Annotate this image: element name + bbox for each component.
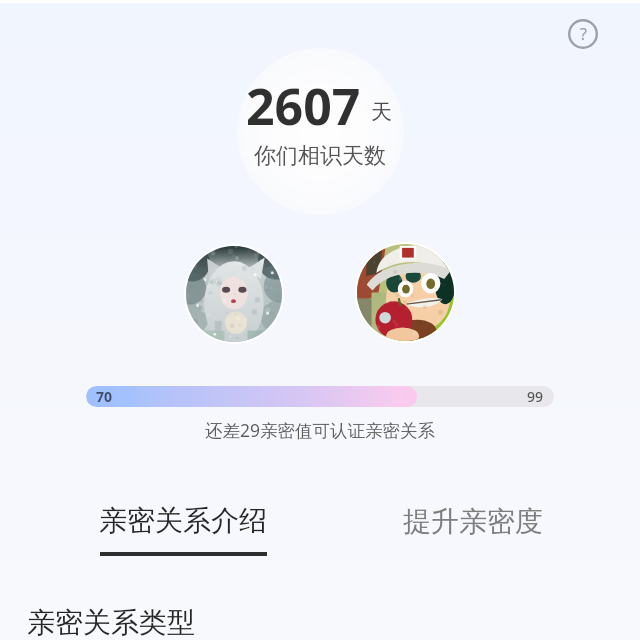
button[interactable]: 亲密关系介绍 <box>87 495 279 564</box>
staticText: 天 <box>371 99 392 125</box>
staticText: 你们相识天数 <box>254 142 386 170</box>
staticText: 70 <box>96 387 113 406</box>
button[interactable]: Help <box>564 15 602 53</box>
staticText: 2607 <box>246 72 361 140</box>
staticText: 提升亲密度 <box>403 504 543 539</box>
staticText: ? <box>580 23 587 45</box>
staticText: 亲密关系介绍 <box>99 503 267 538</box>
button[interactable]: 提升亲密度 <box>391 496 555 547</box>
staticText: 亲密关系类型 <box>27 605 195 640</box>
button[interactable]: Partner avatar one <box>184 244 284 344</box>
staticText: 99 <box>527 387 544 406</box>
button[interactable]: Partner avatar two <box>355 242 456 343</box>
staticText: 还差29亲密值可认证亲密关系 <box>205 418 436 442</box>
